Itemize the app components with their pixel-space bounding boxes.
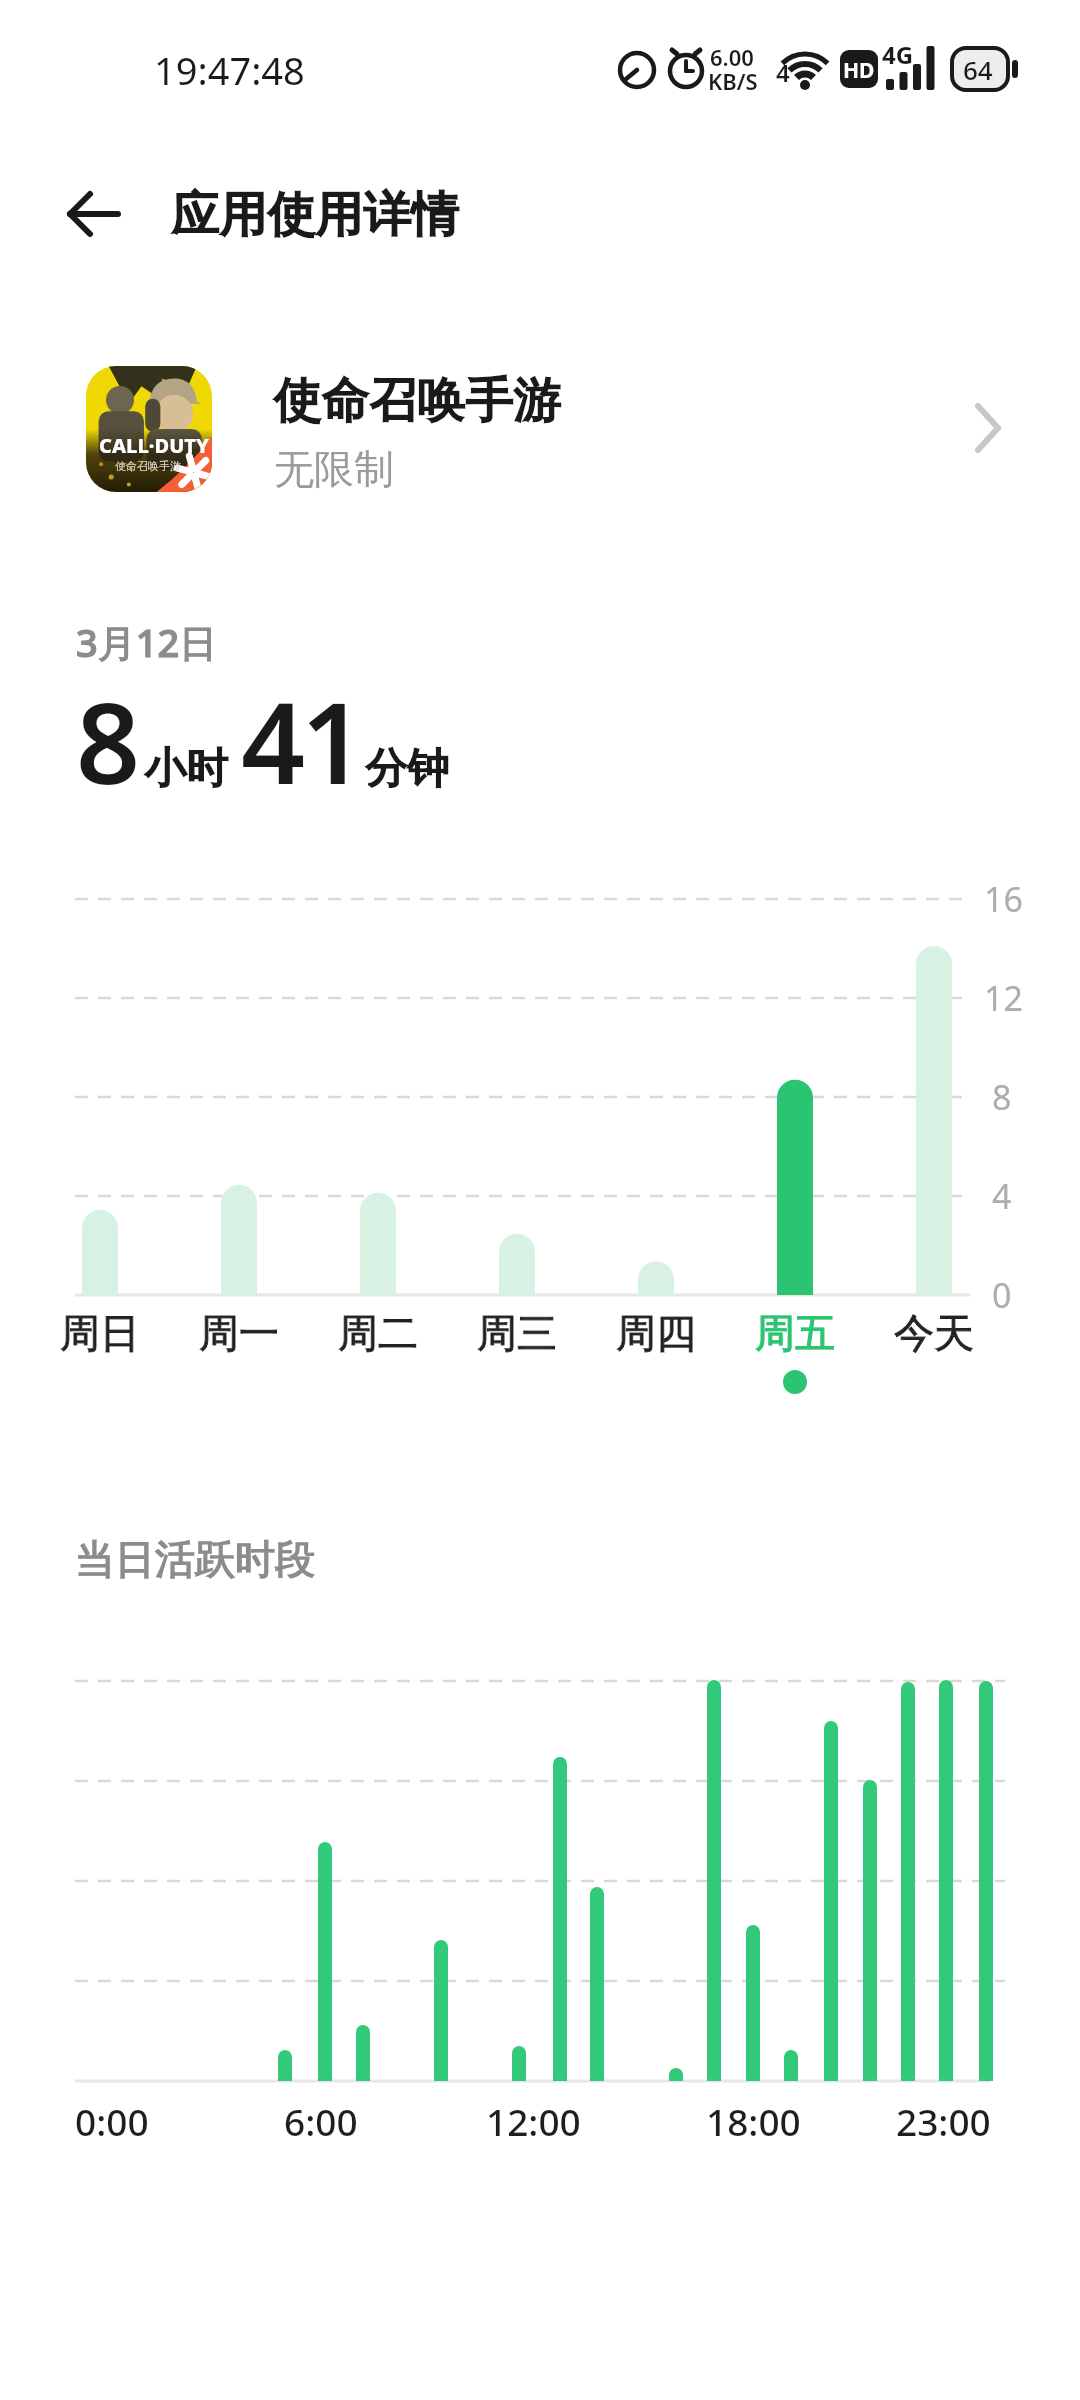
staticText: KB/S bbox=[708, 66, 758, 96]
staticText: 4G bbox=[882, 38, 914, 71]
staticText: 4 bbox=[992, 1173, 1012, 1219]
staticText: 当日活跃时段 bbox=[75, 1534, 315, 1584]
staticText: 8 bbox=[76, 664, 139, 817]
staticText: 3月12日 bbox=[76, 616, 218, 668]
staticText: 周三 bbox=[477, 1308, 557, 1358]
staticText: 小时 bbox=[145, 742, 229, 795]
button[interactable] bbox=[66, 190, 124, 238]
button[interactable]: CALL·DUTY bbox=[86, 366, 212, 492]
staticText: 0 bbox=[992, 1272, 1012, 1318]
staticText: 周二 bbox=[338, 1308, 418, 1358]
staticText: 周四 bbox=[616, 1308, 696, 1358]
staticText: 41 bbox=[241, 664, 362, 817]
staticText: 周五 bbox=[755, 1308, 835, 1358]
staticText: 23:00 bbox=[896, 2096, 991, 2146]
staticText: 无限制 bbox=[274, 444, 394, 494]
staticText: 64 bbox=[963, 52, 993, 87]
staticText: 周一 bbox=[199, 1308, 279, 1358]
staticText: 应用使用详情 bbox=[172, 184, 460, 244]
staticText: 周日 bbox=[60, 1308, 140, 1358]
staticText: 今天 bbox=[894, 1308, 974, 1358]
staticText: 3月12日 bbox=[76, 616, 218, 668]
staticText: 小时 bbox=[145, 742, 229, 795]
staticText: 4 bbox=[776, 56, 790, 89]
button[interactable]: CALL·DUTY bbox=[0, 350, 1080, 510]
staticText: 19:47:48 bbox=[154, 44, 305, 96]
staticText: 使命召唤手游 bbox=[274, 370, 562, 430]
staticText: 12 bbox=[984, 975, 1023, 1021]
staticText: 6.00 bbox=[710, 42, 754, 72]
staticText: 6:00 bbox=[284, 2096, 358, 2146]
staticText: 使命召唤手游 bbox=[274, 370, 562, 430]
staticText: CALL·DUTY bbox=[99, 432, 209, 459]
staticText: 分钟 bbox=[366, 742, 450, 795]
staticText: 当日活跃时段 bbox=[75, 1534, 315, 1584]
staticText: 分钟 bbox=[366, 742, 450, 795]
staticText: 18:00 bbox=[706, 2096, 801, 2146]
staticText: 应用使用详情 bbox=[172, 184, 460, 244]
staticText: 使命召唤手游 bbox=[115, 459, 181, 473]
staticText: HD bbox=[843, 56, 875, 85]
staticText: 16 bbox=[984, 876, 1023, 922]
staticText: 8 bbox=[992, 1074, 1012, 1120]
staticText: 0:00 bbox=[75, 2096, 149, 2146]
staticText: 12:00 bbox=[486, 2096, 581, 2146]
